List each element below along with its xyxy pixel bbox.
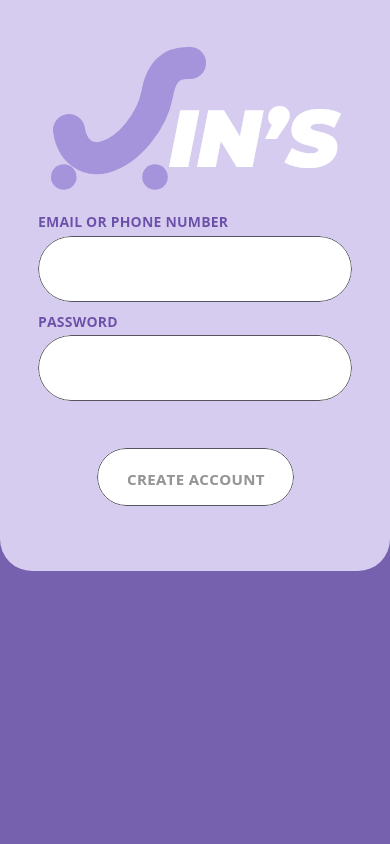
- staticText: IN’S: [169, 90, 339, 188]
- staticText: CREATE ACCOUNT: [127, 469, 265, 489]
- button[interactable]: Password input: [38, 335, 352, 401]
- button[interactable]: Email or phone number input: [38, 236, 352, 302]
- button[interactable]: CREATE ACCOUNT: [97, 448, 294, 506]
- staticText: PASSWORD: [38, 312, 118, 331]
- staticText: EMAIL OR PHONE NUMBER: [38, 212, 229, 231]
